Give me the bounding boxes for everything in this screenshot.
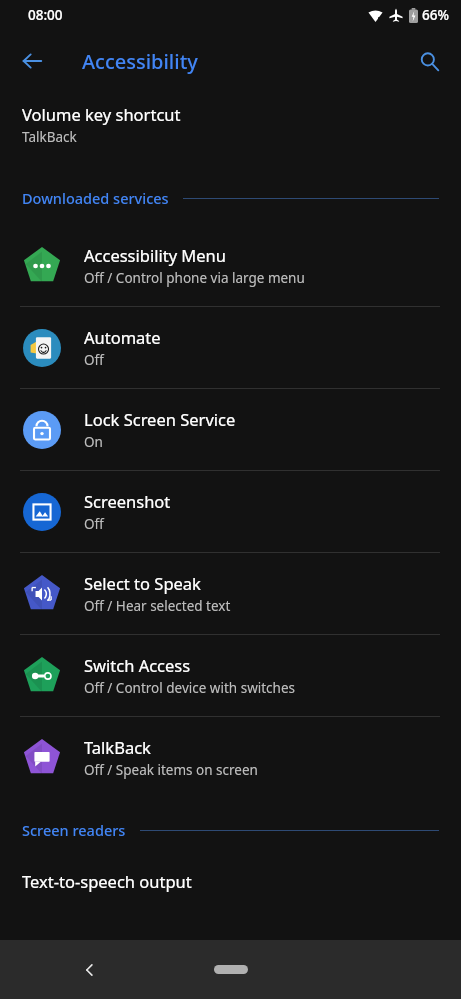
staticText: TalkBack <box>22 128 77 146</box>
staticText: Off <box>84 515 104 533</box>
button[interactable]: Home <box>214 965 248 974</box>
staticText: Lock Screen Service <box>84 408 236 430</box>
button[interactable]: Search <box>407 39 451 83</box>
button[interactable]: Switch Access <box>0 635 461 716</box>
staticText: Off / Speak items on screen <box>84 761 258 779</box>
button[interactable]: Volume key shortcut <box>0 92 461 154</box>
button[interactable]: TalkBack <box>0 717 461 798</box>
button[interactable]: Select to Speak <box>0 553 461 634</box>
staticText: Downloaded services <box>22 188 169 208</box>
button[interactable]: Back <box>72 952 108 988</box>
staticText: Off / Control device with switches <box>84 679 296 697</box>
staticText: Volume key shortcut <box>22 103 181 125</box>
staticText: Text-to-speech output <box>22 870 192 892</box>
button[interactable]: Accessibility Menu <box>0 225 461 306</box>
staticText: Accessibility <box>82 48 198 75</box>
staticText: Automate <box>84 326 161 348</box>
staticText: Screenshot <box>84 490 171 512</box>
staticText: 08:00 <box>28 6 63 24</box>
button[interactable]: Lock Screen Service <box>0 389 461 470</box>
button[interactable]: Automate <box>0 307 461 388</box>
staticText: 66% <box>422 6 449 24</box>
staticText: Off <box>84 351 104 369</box>
button[interactable]: Text-to-speech output <box>0 864 461 898</box>
staticText: On <box>84 433 103 451</box>
button[interactable]: Screenshot <box>0 471 461 552</box>
staticText: Select to Speak <box>84 572 201 594</box>
button[interactable]: Back <box>10 39 54 83</box>
staticText: Off / Control phone via large menu <box>84 269 305 287</box>
staticText: TalkBack <box>84 736 151 758</box>
staticText: Accessibility Menu <box>84 244 226 266</box>
staticText: Screen readers <box>22 820 126 840</box>
staticText: Off / Hear selected text <box>84 597 231 615</box>
staticText: Switch Access <box>84 654 191 676</box>
